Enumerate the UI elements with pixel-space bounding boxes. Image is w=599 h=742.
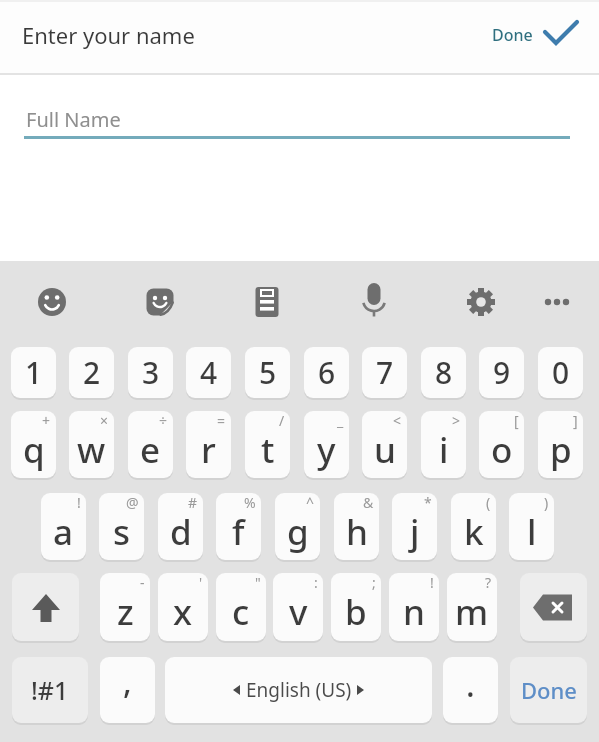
button[interactable]: j bbox=[392, 493, 437, 560]
staticText: a bbox=[53, 508, 74, 556]
staticText: l bbox=[527, 508, 537, 556]
staticText: o bbox=[491, 426, 513, 474]
staticText: 2 bbox=[83, 352, 101, 393]
button[interactable]: r bbox=[186, 411, 231, 478]
button[interactable]: 7 bbox=[362, 347, 407, 398]
staticText: d bbox=[170, 508, 192, 556]
button[interactable] bbox=[12, 573, 79, 641]
button[interactable]: u bbox=[362, 411, 407, 478]
staticText: English (US) bbox=[246, 677, 352, 703]
button[interactable]: , bbox=[100, 657, 155, 723]
button[interactable]: p bbox=[538, 411, 583, 478]
button[interactable]: y bbox=[304, 411, 349, 478]
staticText: h bbox=[346, 508, 368, 556]
staticText: 6 bbox=[318, 352, 336, 393]
staticText: # bbox=[188, 493, 198, 512]
staticText: * bbox=[424, 493, 432, 512]
staticText: . bbox=[466, 663, 475, 707]
staticText: s bbox=[113, 508, 131, 556]
staticText: c bbox=[232, 588, 250, 636]
button[interactable] bbox=[138, 280, 182, 324]
staticText: q bbox=[23, 426, 45, 474]
button[interactable]: z bbox=[100, 573, 150, 641]
staticText: : bbox=[314, 573, 318, 592]
button[interactable]: e bbox=[128, 411, 173, 478]
staticText: m bbox=[455, 588, 489, 636]
staticText: " bbox=[255, 573, 261, 592]
staticText: p bbox=[550, 426, 572, 474]
staticText: k bbox=[464, 508, 484, 556]
button[interactable]: v bbox=[273, 573, 323, 641]
button[interactable]: f bbox=[216, 493, 261, 560]
staticText: = bbox=[217, 411, 226, 430]
button[interactable]: 0 bbox=[538, 347, 583, 398]
staticText: 7 bbox=[376, 352, 394, 393]
button[interactable]: 5 bbox=[245, 347, 290, 398]
button[interactable]: h bbox=[334, 493, 379, 560]
staticText: b bbox=[345, 588, 367, 636]
button[interactable]: !#1 bbox=[12, 657, 88, 723]
button[interactable] bbox=[520, 573, 587, 641]
staticText: t bbox=[261, 426, 275, 474]
button[interactable]: . bbox=[443, 657, 498, 723]
staticText: x bbox=[173, 588, 193, 636]
button[interactable]: q bbox=[11, 411, 56, 478]
staticText: × bbox=[100, 411, 109, 430]
button[interactable]: i bbox=[421, 411, 466, 478]
staticText: ÷ bbox=[159, 411, 168, 430]
staticText: i bbox=[439, 426, 449, 474]
button[interactable]: m bbox=[447, 573, 497, 641]
button[interactable] bbox=[535, 280, 579, 324]
button[interactable]: Done bbox=[480, 10, 590, 65]
button[interactable]: 1 bbox=[11, 347, 56, 398]
button[interactable]: l bbox=[509, 493, 554, 560]
staticText: e bbox=[140, 426, 161, 474]
button[interactable]: English (US) bbox=[165, 657, 432, 723]
button[interactable]: Done bbox=[510, 657, 587, 723]
button[interactable]: b bbox=[331, 573, 381, 641]
staticText: !#1 bbox=[31, 673, 69, 707]
staticText: v bbox=[289, 588, 308, 636]
button[interactable] bbox=[352, 278, 396, 322]
staticText: 9 bbox=[493, 352, 511, 393]
staticText: 4 bbox=[200, 352, 218, 393]
button[interactable]: 2 bbox=[69, 347, 114, 398]
button[interactable]: d bbox=[158, 493, 203, 560]
staticText: 1 bbox=[25, 352, 43, 393]
button[interactable] bbox=[30, 280, 74, 324]
button[interactable]: s bbox=[99, 493, 144, 560]
staticText: ^ bbox=[306, 493, 315, 512]
staticText: > bbox=[452, 411, 461, 430]
button[interactable]: 9 bbox=[479, 347, 524, 398]
staticText: f bbox=[232, 508, 245, 556]
staticText: ' bbox=[199, 573, 203, 592]
button[interactable]: 3 bbox=[128, 347, 173, 398]
button[interactable]: g bbox=[275, 493, 320, 560]
button[interactable] bbox=[245, 280, 289, 324]
staticText: ; bbox=[372, 573, 376, 592]
button[interactable]: 8 bbox=[421, 347, 466, 398]
staticText: & bbox=[363, 493, 374, 512]
staticText: Enter your name bbox=[22, 20, 195, 50]
button[interactable]: 4 bbox=[186, 347, 231, 398]
button[interactable]: w bbox=[69, 411, 114, 478]
staticText: w bbox=[77, 426, 106, 474]
button[interactable] bbox=[459, 280, 503, 324]
button[interactable]: 6 bbox=[304, 347, 349, 398]
staticText: ] bbox=[573, 411, 578, 430]
staticText: ) bbox=[544, 493, 549, 512]
button[interactable]: a bbox=[41, 493, 86, 560]
button[interactable]: x bbox=[158, 573, 208, 641]
staticText: g bbox=[287, 508, 309, 556]
button[interactable]: k bbox=[451, 493, 496, 560]
staticText: , bbox=[123, 660, 132, 704]
button[interactable]: Full Name bbox=[14, 92, 584, 148]
button[interactable]: n bbox=[389, 573, 439, 641]
staticText: ! bbox=[77, 493, 81, 512]
button[interactable]: o bbox=[479, 411, 524, 478]
button[interactable]: c bbox=[216, 573, 266, 641]
staticText: @ bbox=[126, 493, 139, 512]
staticText: Done bbox=[492, 24, 533, 46]
button[interactable]: t bbox=[245, 411, 290, 478]
staticText: j bbox=[410, 508, 420, 556]
